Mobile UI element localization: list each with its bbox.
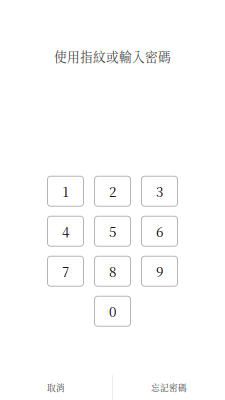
staticText: 1: [62, 182, 68, 201]
staticText: 8: [109, 262, 116, 281]
button[interactable]: 7: [47, 256, 83, 286]
staticText: 6: [156, 222, 163, 241]
button[interactable]: 0: [94, 296, 130, 326]
button[interactable]: 2: [94, 176, 130, 206]
staticText: 5: [109, 222, 116, 241]
staticText: 使用指紋或輸入密碼: [54, 47, 171, 65]
button[interactable]: 6: [141, 216, 177, 246]
staticText: 9: [156, 262, 163, 281]
staticText: 取消: [47, 381, 65, 394]
button[interactable]: 9: [141, 256, 177, 286]
button[interactable]: 3: [141, 176, 177, 206]
button[interactable]: 8: [94, 256, 130, 286]
staticText: 忘記密碼: [151, 381, 187, 394]
button[interactable]: 1: [47, 176, 83, 206]
staticText: 7: [62, 262, 69, 281]
staticText: 0: [109, 302, 116, 321]
staticText: 3: [156, 182, 163, 201]
button[interactable]: 5: [94, 216, 130, 246]
button[interactable]: 取消: [0, 375, 112, 400]
staticText: 2: [109, 182, 116, 201]
button[interactable]: 4: [47, 216, 83, 246]
button[interactable]: 忘記密碼: [113, 375, 225, 400]
staticText: 4: [62, 222, 69, 241]
